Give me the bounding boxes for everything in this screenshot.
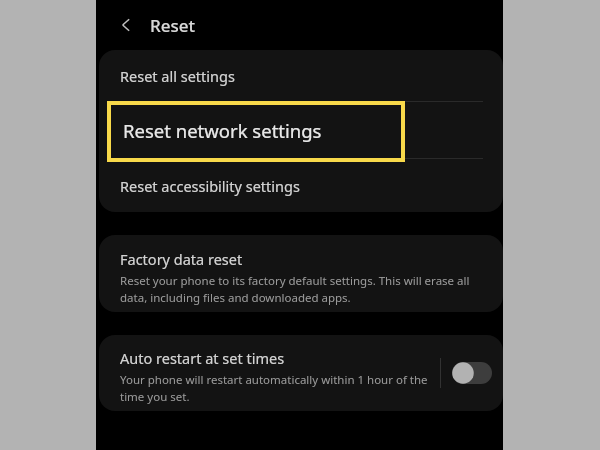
button[interactable]: Reset all settings (99, 50, 503, 101)
staticText: Factory data reset (120, 249, 243, 269)
staticText: Reset your phone to its factory default … (120, 273, 483, 305)
staticText: Auto restart at set times (120, 348, 285, 368)
staticText: Reset (150, 14, 196, 37)
staticText: Reset all settings (120, 66, 235, 86)
button[interactable]: Auto restart toggle (441, 335, 503, 411)
button[interactable]: Reset accessibility settings (99, 159, 503, 212)
staticText: Your phone will restart automatically wi… (120, 372, 432, 404)
button[interactable]: Factory data reset (99, 235, 503, 312)
button[interactable]: Back (112, 10, 142, 40)
button[interactable]: Reset network settings (99, 102, 503, 158)
button[interactable]: Auto restart at set times (99, 335, 440, 411)
staticText: Reset network settings (123, 118, 322, 143)
staticText: Reset accessibility settings (120, 176, 300, 196)
